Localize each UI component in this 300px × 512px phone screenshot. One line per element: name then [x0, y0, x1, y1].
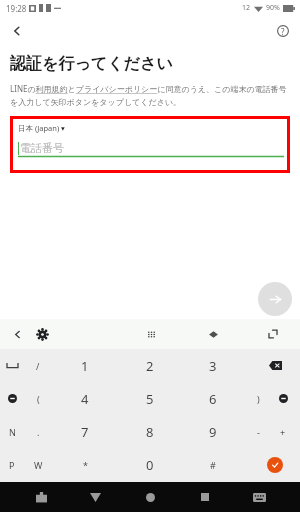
staticText: 7: [81, 423, 89, 441]
staticText: 電話番号: [20, 141, 64, 155]
staticText: .: [37, 426, 40, 438]
button[interactable]: 6: [199, 382, 227, 415]
button[interactable]: -: [244, 415, 272, 448]
other: Enter: [267, 457, 283, 473]
button[interactable]: W: [24, 448, 52, 481]
button[interactable]: #: [199, 448, 227, 481]
button[interactable]: Settings: [30, 319, 54, 349]
button[interactable]: Home: [136, 483, 164, 511]
staticText: 9: [209, 423, 217, 441]
staticText: 19:28: [6, 3, 27, 14]
button[interactable]: *: [71, 448, 99, 481]
button[interactable]: 日本 (Japan) ▾: [18, 123, 65, 133]
button[interactable]: 9: [199, 415, 227, 448]
button[interactable]: P: [0, 448, 26, 481]
staticText: 1: [81, 357, 89, 375]
button[interactable]: [0, 382, 26, 415]
button[interactable]: Back: [6, 319, 28, 349]
button[interactable]: Keyboard layouts: [139, 319, 163, 349]
button[interactable]: Back: [81, 483, 109, 511]
button[interactable]: .: [24, 415, 52, 448]
staticText: 90%: [266, 3, 280, 13]
staticText: #: [210, 459, 216, 471]
button[interactable]: Menu: [27, 483, 55, 511]
staticText: +: [280, 426, 286, 438]
button[interactable]: [269, 382, 297, 415]
staticText: P: [9, 459, 15, 471]
staticText: LINEの利用規約とプライバシーポリシーに同意のうえ、この端末の電話番号を入力し…: [10, 83, 290, 107]
staticText: 8: [146, 423, 154, 441]
staticText: W: [34, 459, 43, 471]
staticText: (: [37, 393, 40, 405]
button[interactable]: 5: [136, 382, 164, 415]
button[interactable]: 0: [136, 448, 164, 481]
staticText: -: [257, 426, 260, 438]
button[interactable]: 8: [136, 415, 164, 448]
button[interactable]: Help: [270, 18, 296, 44]
button[interactable]: N: [0, 415, 26, 448]
button[interactable]: Clipboard: [201, 319, 225, 349]
button[interactable]: 電話番号: [18, 141, 284, 157]
staticText: ): [257, 393, 260, 405]
staticText: 3: [209, 357, 217, 375]
staticText: 5: [146, 390, 154, 408]
button[interactable]: 3: [199, 349, 227, 382]
button[interactable]: Resize keyboard: [261, 319, 285, 349]
staticText: /: [36, 360, 40, 372]
staticText: ?: [281, 26, 285, 37]
button[interactable]: 1: [71, 349, 99, 382]
button[interactable]: /: [24, 349, 52, 382]
button[interactable]: 7: [71, 415, 99, 448]
staticText: 12: [242, 3, 251, 13]
staticText: *: [83, 459, 88, 471]
staticText: 2: [146, 357, 154, 375]
button[interactable]: [0, 349, 26, 382]
button[interactable]: Enter: [261, 448, 289, 481]
button[interactable]: +: [269, 415, 297, 448]
button[interactable]: Recents: [191, 483, 219, 511]
button[interactable]: Back: [4, 18, 30, 44]
staticText: N: [9, 426, 16, 438]
button[interactable]: ): [244, 382, 272, 415]
button[interactable]: Next: [258, 282, 292, 316]
button[interactable]: Keyboard: [245, 483, 273, 511]
button[interactable]: [261, 349, 289, 382]
button[interactable]: 2: [136, 349, 164, 382]
staticText: 0: [146, 456, 154, 474]
staticText: 6: [209, 390, 217, 408]
staticText: 認証を行ってください: [10, 54, 173, 74]
button[interactable]: (: [24, 382, 52, 415]
button[interactable]: 4: [71, 382, 99, 415]
staticText: 4: [81, 390, 89, 408]
